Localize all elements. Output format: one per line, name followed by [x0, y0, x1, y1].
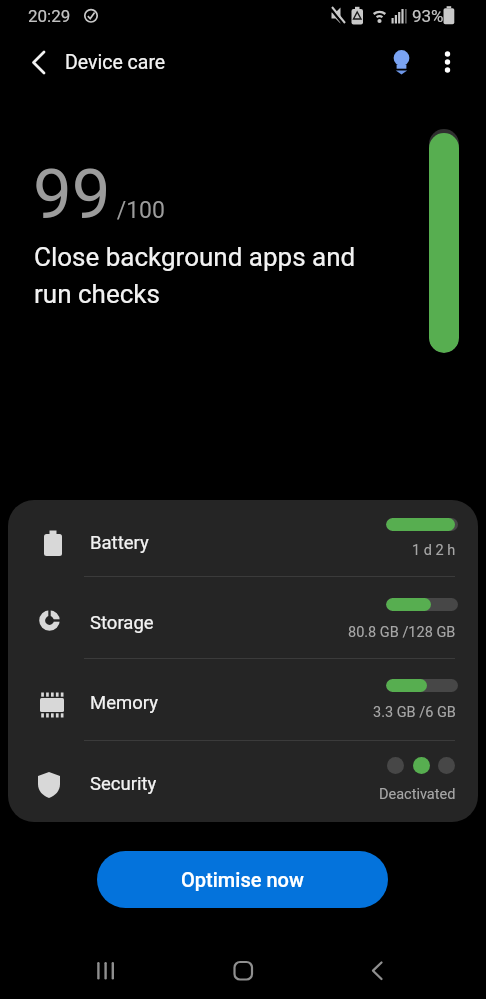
staticText: /100	[111, 197, 165, 224]
staticText: Storage	[90, 612, 154, 634]
button[interactable]	[213, 945, 273, 995]
staticText: 99	[33, 154, 111, 235]
button[interactable]: Optimise now	[97, 851, 388, 908]
button[interactable]	[8, 576, 478, 658]
button[interactable]	[8, 658, 478, 740]
button[interactable]	[382, 42, 422, 82]
staticText: 20:29	[28, 6, 71, 26]
button[interactable]	[347, 945, 407, 995]
staticText: 80.8 GB /128 GB	[348, 624, 456, 641]
staticText: 3.3 GB /6 GB	[373, 704, 456, 721]
button[interactable]	[16, 44, 56, 82]
button[interactable]	[8, 740, 478, 822]
staticText: Security	[90, 773, 157, 795]
staticText: Deactivated	[379, 786, 456, 803]
button[interactable]	[75, 945, 135, 995]
button[interactable]	[8, 500, 478, 576]
staticText: Optimise now	[181, 868, 304, 891]
staticText: 93%	[412, 6, 444, 26]
button[interactable]	[430, 42, 466, 82]
staticText: Memory	[90, 692, 158, 714]
staticText: 1 d 2 h	[412, 542, 456, 559]
staticText: Close background apps and run checks	[34, 242, 356, 309]
staticText: Battery	[90, 532, 149, 554]
staticText: Device care	[65, 51, 166, 74]
